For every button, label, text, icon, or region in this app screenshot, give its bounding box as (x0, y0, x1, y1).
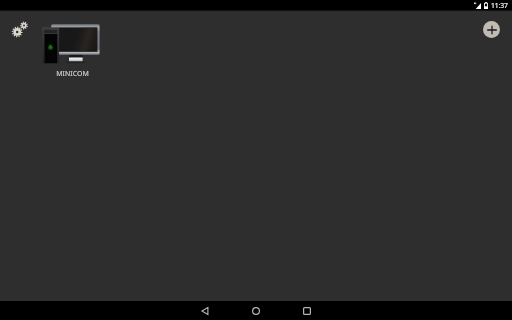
staticText: 11:37 (491, 1, 508, 10)
button[interactable]: Add (483, 21, 500, 38)
button[interactable]: Settings (9, 19, 31, 41)
button[interactable]: Home (247, 302, 265, 320)
button[interactable]: MINICOM (36, 20, 108, 74)
button[interactable]: Recent apps (298, 302, 316, 320)
staticText: MINICOM (56, 69, 89, 79)
button[interactable]: Back (196, 302, 214, 320)
